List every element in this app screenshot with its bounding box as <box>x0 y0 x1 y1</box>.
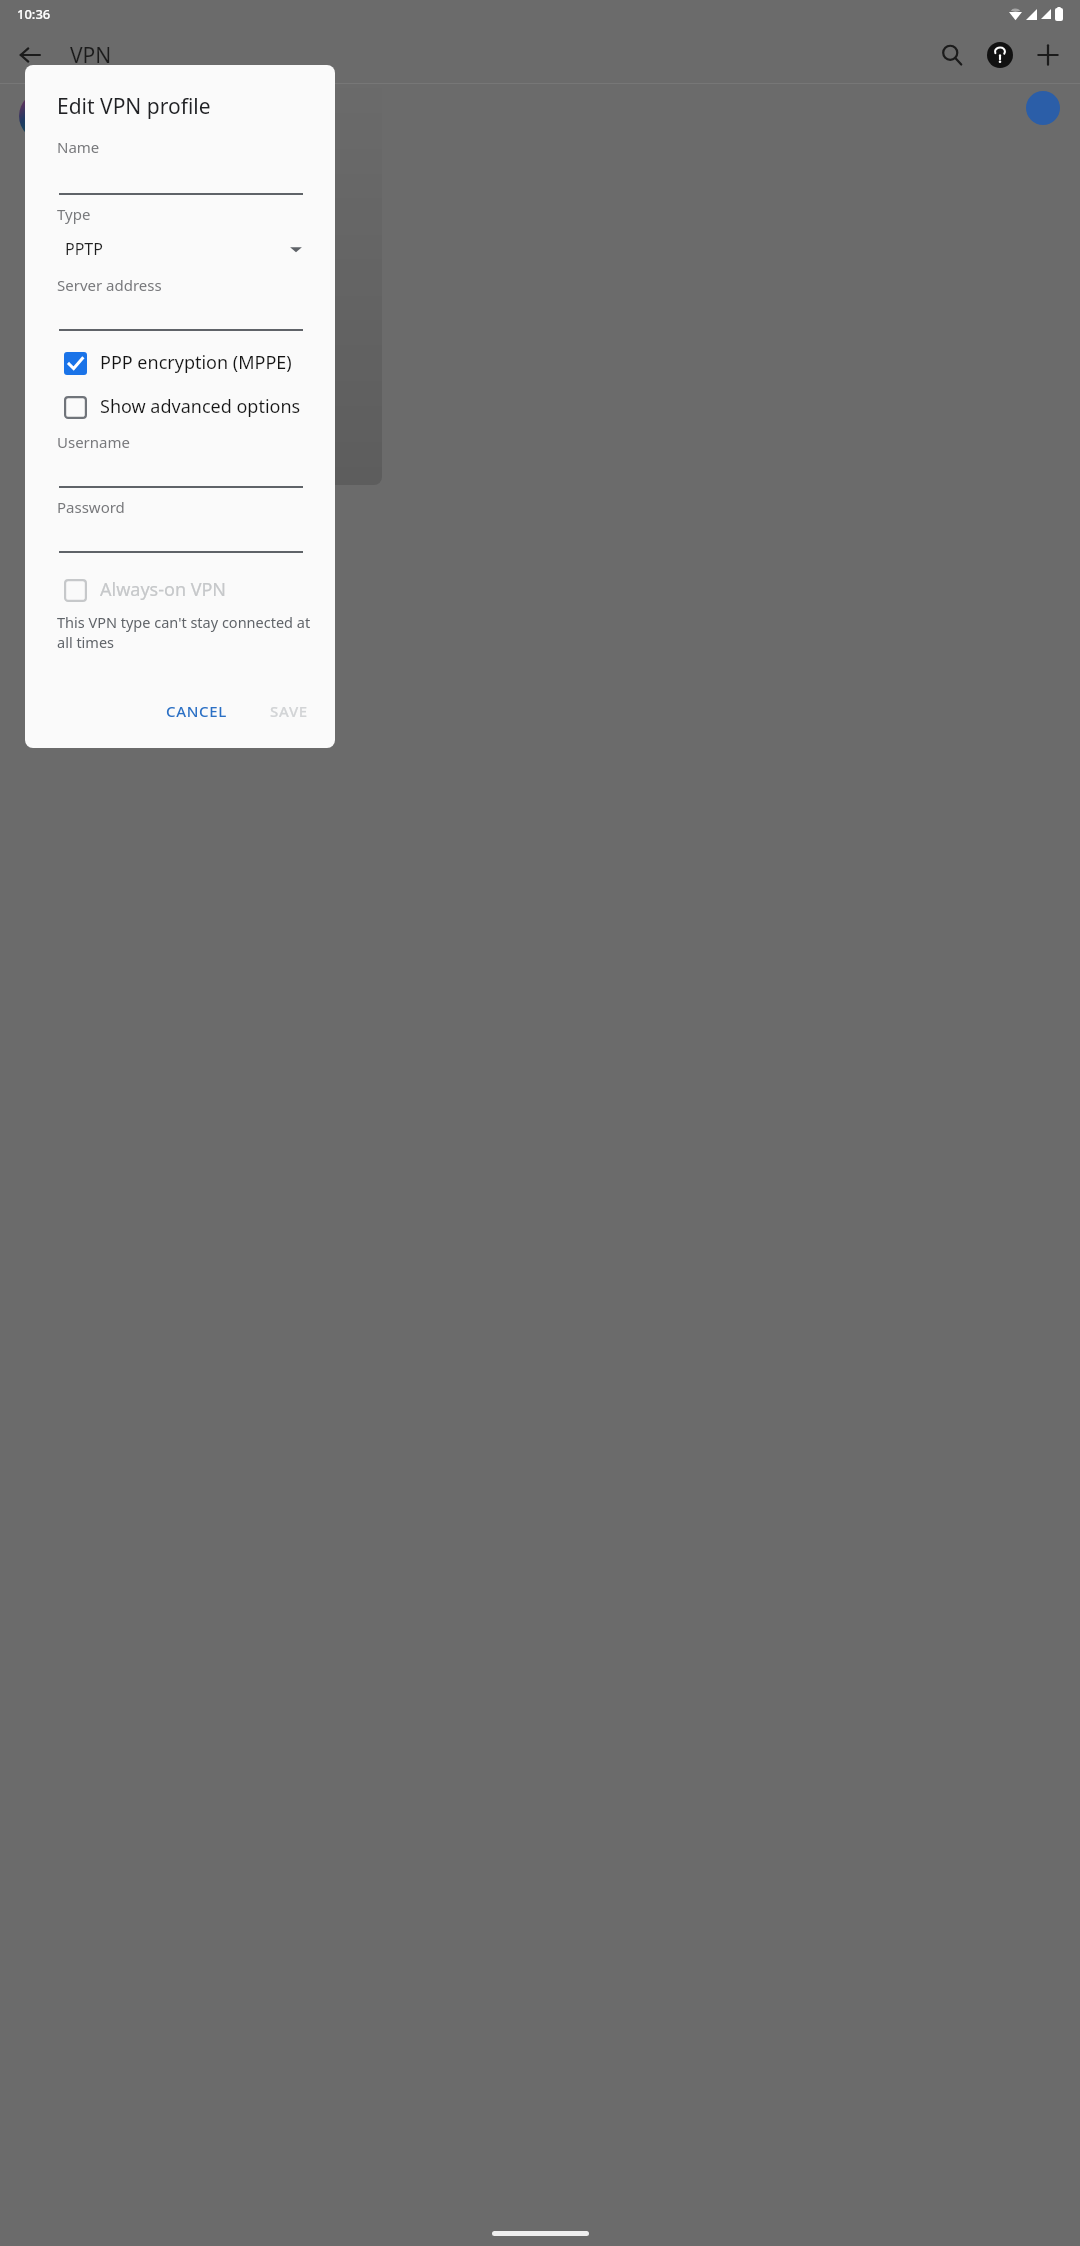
staticText: Always-on VPN <box>100 577 227 602</box>
staticText: This VPN type can't stay connected at al… <box>57 612 315 652</box>
button[interactable]: Always-on VPN <box>57 577 315 602</box>
button[interactable]: Help <box>976 31 1024 79</box>
button[interactable]: Show advanced options <box>57 394 315 419</box>
staticText: Password <box>57 497 125 517</box>
staticText: Username <box>57 432 130 452</box>
button[interactable]: Add VPN profile <box>1024 31 1072 79</box>
staticText: PPTP <box>65 238 103 260</box>
staticText: Edit VPN profile <box>57 92 211 121</box>
staticText: VPN <box>70 41 112 70</box>
button[interactable]: Back <box>10 35 50 75</box>
staticText: 10:36 <box>17 5 51 23</box>
staticText: CANCEL <box>166 701 228 721</box>
button[interactable]: Search <box>928 31 976 79</box>
staticText: PPP encryption (MPPE) <box>100 350 292 375</box>
button[interactable]: SAVE <box>257 692 321 730</box>
staticText: Show advanced options <box>100 394 301 419</box>
staticText: Name <box>57 137 100 157</box>
staticText: Server address <box>57 275 162 295</box>
staticText: SAVE <box>270 701 308 721</box>
button[interactable]: PPTP <box>57 232 303 266</box>
button[interactable]: CANCEL <box>153 692 241 730</box>
staticText: Type <box>57 204 91 224</box>
button[interactable]: PPP encryption (MPPE) <box>57 350 315 375</box>
